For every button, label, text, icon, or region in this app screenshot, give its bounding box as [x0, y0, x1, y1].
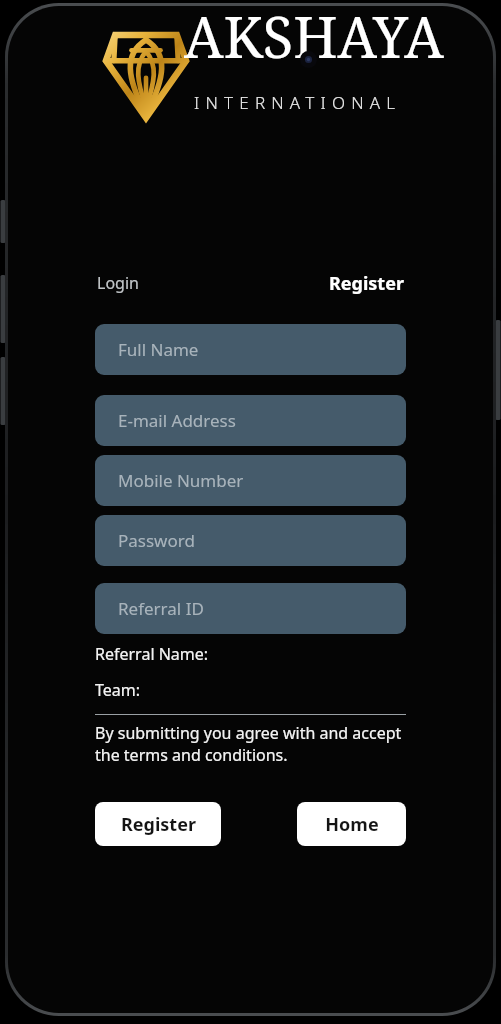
button[interactable]: Register — [327, 269, 406, 298]
staticText: AKSHAYA — [184, 6, 444, 74]
staticText: Register — [329, 271, 404, 296]
staticText: INTERNATIONAL — [194, 91, 402, 114]
button[interactable]: Full Name — [95, 324, 406, 375]
staticText: By submitting you agree with and accept … — [95, 722, 406, 766]
staticText: E-mail Address — [118, 409, 236, 432]
button[interactable]: Password — [95, 515, 406, 566]
button[interactable]: Home — [297, 802, 406, 846]
staticText: Login — [97, 272, 139, 294]
staticText: Referral Name: — [95, 643, 209, 665]
button[interactable]: E-mail Address — [95, 395, 406, 446]
staticText: Referral ID — [118, 597, 204, 620]
button[interactable]: Mobile Number — [95, 455, 406, 506]
other: Akshaya International logo — [102, 31, 190, 121]
staticText: Team: — [95, 679, 141, 701]
button[interactable]: Register — [95, 802, 221, 846]
staticText: Password — [118, 529, 195, 552]
staticText: Register — [121, 812, 196, 837]
staticText: Home — [325, 812, 379, 837]
staticText: Mobile Number — [118, 469, 244, 492]
staticText: Full Name — [118, 338, 199, 361]
button[interactable]: Login — [95, 268, 141, 298]
button[interactable]: Referral ID — [95, 583, 406, 634]
